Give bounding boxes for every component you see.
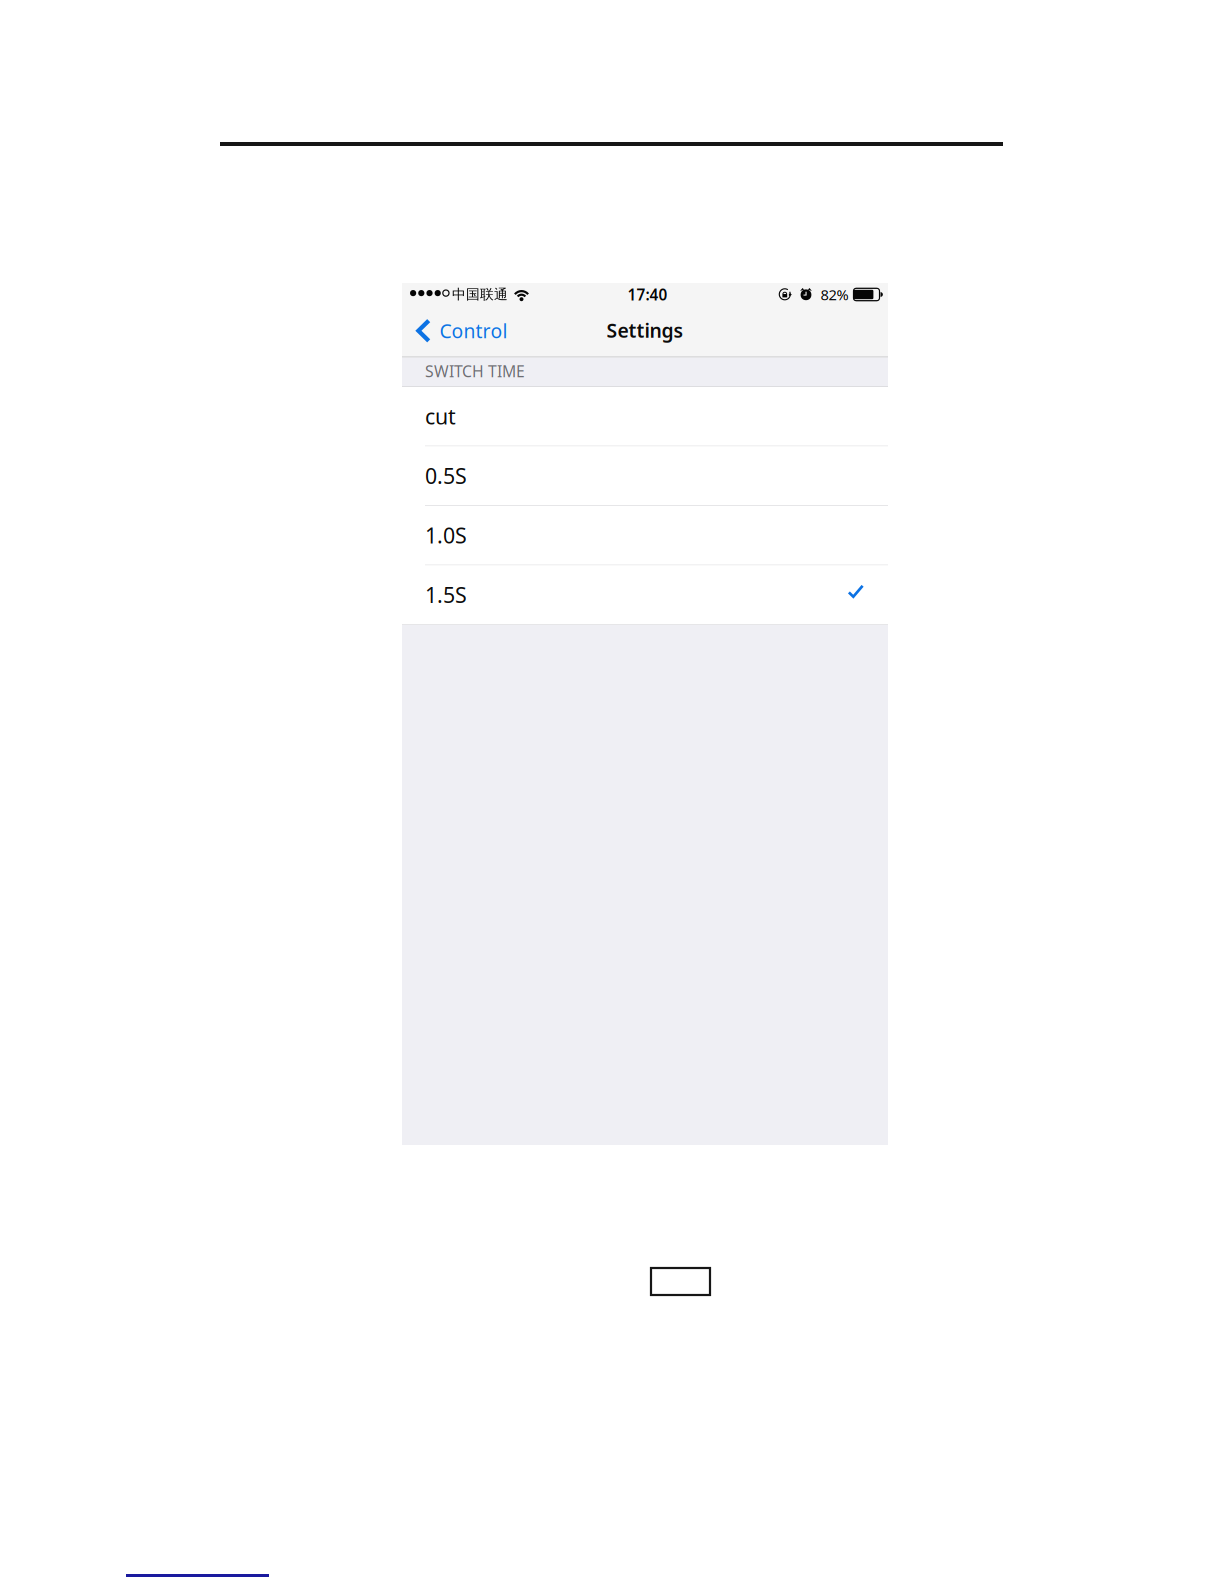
button[interactable]: 0.5S xyxy=(402,446,888,505)
button[interactable]: 1.0S xyxy=(402,506,888,564)
button[interactable]: 1.5S xyxy=(402,565,888,624)
button[interactable]: cut xyxy=(402,387,888,445)
staticText: 17:40 xyxy=(627,284,667,305)
staticText: SWITCH TIME xyxy=(425,360,525,382)
staticText: cut xyxy=(425,402,456,431)
staticText: Settings xyxy=(606,317,683,343)
staticText: 1.5S xyxy=(425,580,467,609)
staticText: Control xyxy=(439,318,507,344)
staticText: 中国联通 xyxy=(452,286,508,303)
staticText: 82% xyxy=(820,284,848,304)
staticText: 0.5S xyxy=(425,461,467,490)
button[interactable]: Back to Control xyxy=(402,312,517,357)
staticText: 1.0S xyxy=(425,521,467,550)
